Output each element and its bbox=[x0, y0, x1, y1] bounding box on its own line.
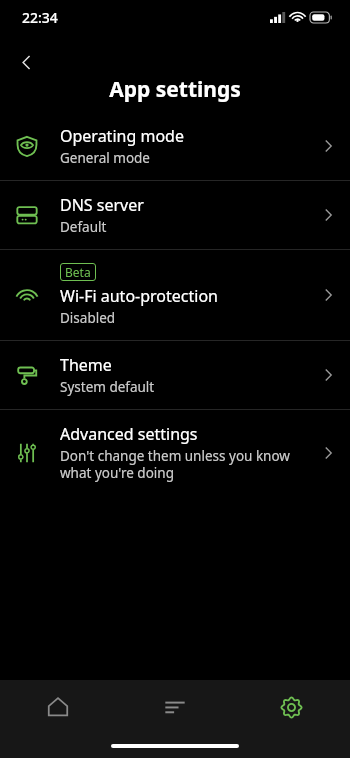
staticText: Beta bbox=[65, 264, 91, 280]
staticText: App settings bbox=[109, 75, 241, 104]
button[interactable]: Settings bbox=[233, 680, 350, 734]
staticText: DNS server bbox=[60, 194, 144, 216]
staticText: Wi-Fi auto-protection bbox=[60, 285, 218, 307]
button[interactable]: Back bbox=[4, 40, 48, 84]
staticText: General mode bbox=[60, 149, 150, 167]
button[interactable]: DNS server bbox=[0, 181, 350, 249]
staticText: 22:34 bbox=[22, 8, 58, 27]
staticText: Operating mode bbox=[60, 125, 184, 147]
staticText: Advanced settings bbox=[60, 423, 198, 445]
button[interactable]: Operating mode bbox=[0, 112, 350, 180]
button[interactable]: Theme bbox=[0, 341, 350, 409]
staticText: Don't change them unless you know what y… bbox=[60, 447, 310, 482]
staticText: Theme bbox=[60, 354, 112, 376]
button[interactable]: Advanced settings bbox=[0, 410, 350, 495]
staticText: Default bbox=[60, 218, 107, 236]
staticText: System default bbox=[60, 378, 155, 396]
staticText: Disabled bbox=[60, 309, 116, 327]
button[interactable]: Beta bbox=[0, 250, 350, 340]
button[interactable]: Home bbox=[0, 680, 116, 734]
button[interactable]: Logs bbox=[116, 680, 233, 734]
